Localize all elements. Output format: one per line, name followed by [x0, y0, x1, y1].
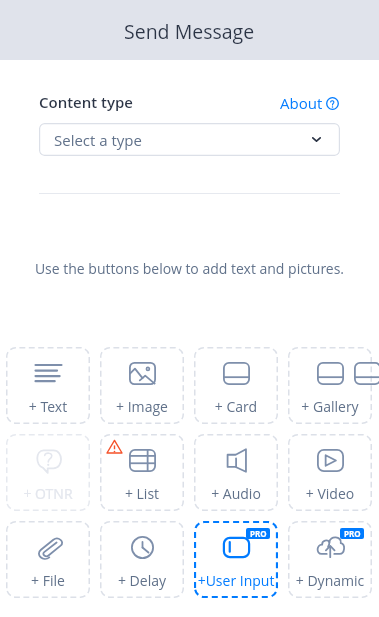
staticText: + Video [288, 484, 372, 503]
staticText: + Delay [100, 571, 184, 590]
button[interactable]: + Text [6, 347, 90, 424]
button[interactable]: + Delay [100, 521, 184, 598]
staticText: + OTNR [6, 484, 90, 503]
staticText: Content type [39, 92, 133, 112]
button[interactable]: + File [6, 521, 90, 598]
button[interactable]: + OTNR [6, 434, 90, 511]
staticText: +User Input [194, 571, 278, 590]
staticText: + Dynamic [288, 571, 372, 590]
button[interactable]: + Video [288, 434, 372, 511]
staticText: + Text [6, 397, 90, 416]
staticText: + Audio [194, 484, 278, 503]
staticText: Send Message [124, 18, 255, 45]
staticText: About [280, 93, 323, 113]
staticText: + Card [194, 397, 278, 416]
staticText: + List [100, 484, 184, 503]
staticText: Use the buttons below to add text and pi… [0, 259, 379, 278]
button[interactable]: + Audio [194, 434, 278, 511]
button[interactable]: +User Input [194, 521, 278, 598]
button[interactable]: + Image [100, 347, 184, 424]
button[interactable]: + Dynamic [288, 521, 372, 598]
button[interactable]: Select a type [39, 123, 340, 156]
staticText: + Gallery [288, 397, 372, 416]
staticText: PRO [250, 528, 267, 539]
staticText: Select a type [54, 130, 142, 150]
staticText: PRO [344, 528, 361, 539]
button[interactable]: + List [100, 434, 184, 511]
button[interactable]: + Card [194, 347, 278, 424]
button[interactable]: + Gallery [288, 347, 372, 424]
staticText: + Image [100, 397, 184, 416]
button[interactable]: About [280, 93, 339, 113]
staticText: + File [6, 571, 90, 590]
